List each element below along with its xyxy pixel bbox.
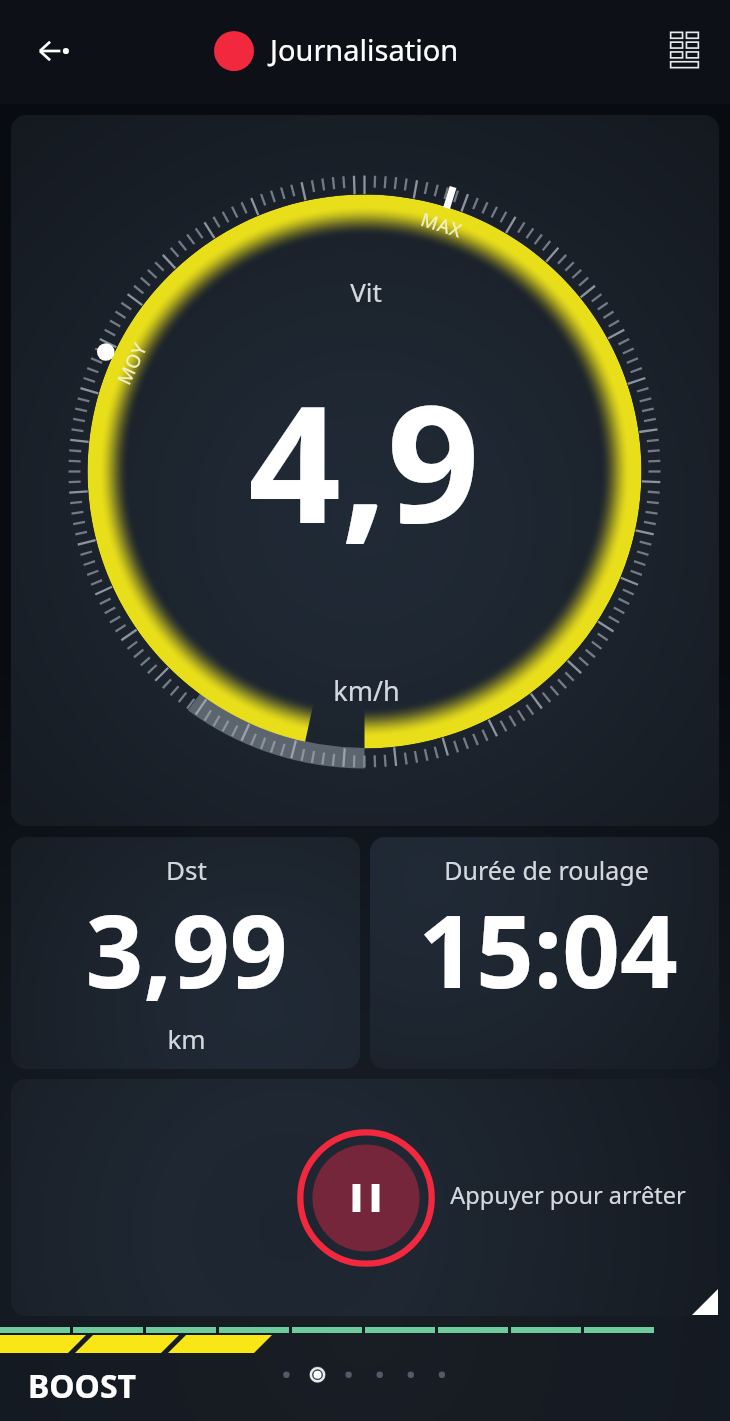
staticText: 3,99 [85,880,288,1018]
staticText: BOOST [28,1364,137,1408]
staticText: 4,9 [248,350,480,571]
staticText: Dst [166,852,207,887]
button[interactable] [370,837,719,1069]
button[interactable] [11,837,360,1069]
button[interactable]: Appuyer pour arrêter [296,1128,436,1268]
staticText: km/h [333,672,400,709]
staticText: 15:04 [418,880,678,1018]
staticText: MOY [111,338,152,388]
staticText: MAX [418,206,466,243]
staticText: Vit [350,274,382,309]
button[interactable]: Layout options [652,18,718,84]
staticText: km [167,1021,206,1056]
staticText: Journalisation [270,30,459,69]
staticText: Appuyer pour arrêter [450,1179,686,1211]
staticText: Durée de roulage [444,853,649,887]
button[interactable]: Back [20,20,82,82]
